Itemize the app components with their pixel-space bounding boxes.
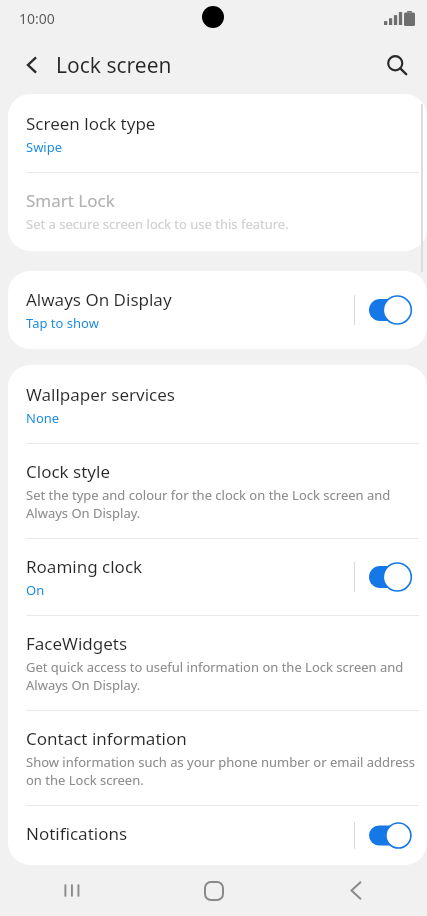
staticText: Screen lock type: [26, 112, 156, 135]
button[interactable]: Screen lock type: [8, 94, 427, 172]
button[interactable]: Roaming clock: [8, 539, 427, 615]
staticText: FaceWidgets: [26, 632, 128, 655]
staticText: None: [26, 409, 60, 427]
staticText: 10:00: [19, 9, 55, 28]
staticText: Set a secure screen lock to use this fea…: [26, 215, 289, 233]
button[interactable]: Smart Lock: [8, 173, 427, 251]
staticText: Clock style: [26, 460, 110, 483]
staticText: Set the type and colour for the clock on…: [26, 486, 417, 522]
staticText: Tap to show: [26, 314, 99, 332]
button[interactable]: Wallpaper services: [8, 365, 427, 443]
button[interactable]: Recent apps: [0, 865, 143, 916]
button[interactable]: Notifications: [8, 806, 427, 865]
staticText: Show information such as your phone numb…: [26, 753, 417, 789]
staticText: Lock screen: [56, 51, 172, 80]
button[interactable]: Back: [285, 865, 427, 916]
button[interactable]: Home: [143, 865, 285, 916]
button[interactable]: Toggle: [369, 295, 417, 325]
staticText: Wallpaper services: [26, 383, 175, 406]
button[interactable]: Contact information: [8, 711, 427, 805]
button[interactable]: Always On Display: [8, 271, 427, 349]
staticText: Smart Lock: [26, 189, 115, 212]
staticText: Swipe: [26, 138, 63, 156]
staticText: Always On Display: [26, 288, 172, 311]
button[interactable]: Search: [373, 41, 421, 89]
staticText: On: [26, 581, 45, 599]
button[interactable]: Toggle: [369, 822, 417, 849]
staticText: Contact information: [26, 727, 187, 750]
staticText: Get quick access to useful information o…: [26, 658, 417, 694]
button[interactable]: Back: [8, 41, 56, 89]
button[interactable]: FaceWidgets: [8, 616, 427, 710]
staticText: Notifications: [26, 822, 128, 845]
staticText: Roaming clock: [26, 555, 143, 578]
button[interactable]: Clock style: [8, 444, 427, 538]
button[interactable]: Toggle: [369, 562, 417, 592]
